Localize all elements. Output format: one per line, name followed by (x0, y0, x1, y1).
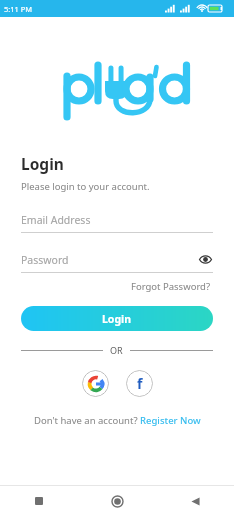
button[interactable]: Home (78, 486, 156, 516)
button[interactable]: Email Address (21, 213, 213, 233)
staticText: OR (110, 344, 123, 356)
button[interactable]: Recents (0, 486, 78, 516)
staticText: 5:11 PM (4, 4, 33, 14)
button[interactable]: Toggle password visibility (198, 252, 213, 267)
button[interactable]: Don't have an account? Register Now (32, 412, 203, 429)
staticText: Don't have an account? Register Now (34, 414, 201, 427)
staticText: Forgot Password? (131, 280, 211, 293)
staticText: f (137, 374, 143, 393)
staticText: Password (21, 253, 198, 267)
button[interactable]: Sign in with Facebook (126, 370, 153, 397)
button[interactable]: Password (21, 252, 213, 273)
button[interactable]: Login (21, 306, 213, 331)
other: plug'd logo (61, 61, 173, 119)
button[interactable]: Back (156, 486, 234, 516)
staticText: Login (102, 312, 132, 326)
staticText: Login (21, 153, 64, 174)
button[interactable]: Sign in with Google (82, 370, 109, 397)
staticText: Email Address (21, 213, 213, 227)
button[interactable]: Forgot Password? (129, 278, 213, 295)
staticText: Please login to your account. (21, 180, 150, 193)
